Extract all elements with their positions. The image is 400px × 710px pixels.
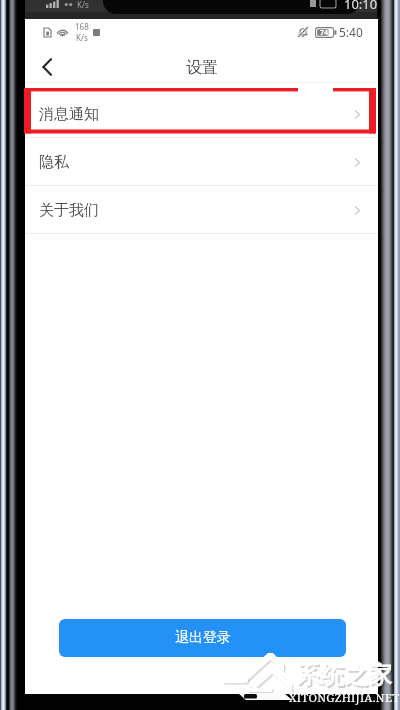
staticText: 168 xyxy=(75,21,89,32)
button[interactable]: 关于我们 xyxy=(25,186,378,234)
button[interactable]: 退出登录 xyxy=(59,619,346,657)
staticText: XITONGZHIJIA.NET xyxy=(289,690,400,706)
staticText: 退出登录 xyxy=(175,629,231,647)
staticText: 5:40 xyxy=(339,24,363,40)
staticText: 设置 xyxy=(186,58,218,78)
button[interactable]: 消息通知 xyxy=(25,90,378,138)
staticText: 消息通知 xyxy=(39,105,99,124)
staticText: 74 xyxy=(320,28,329,38)
staticText: 系统之家 xyxy=(298,662,394,692)
staticText: 隐私 xyxy=(39,153,69,172)
staticText: K/s xyxy=(77,0,89,10)
staticText: 10:10 xyxy=(344,0,378,13)
staticText: K/s xyxy=(76,32,88,43)
staticText: 系统之家 xyxy=(296,660,392,690)
staticText: 关于我们 xyxy=(39,201,99,220)
button[interactable]: 隐私 xyxy=(25,138,378,186)
button[interactable]: Back xyxy=(25,45,67,83)
